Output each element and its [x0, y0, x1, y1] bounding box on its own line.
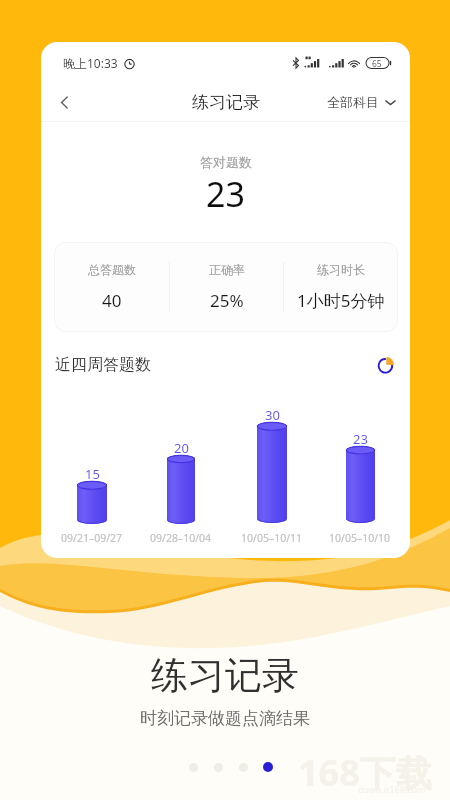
staticText: 25%: [210, 289, 244, 312]
staticText: 20: [174, 439, 189, 457]
staticText: 练习记录: [151, 652, 299, 699]
staticText: 09/21–09/27: [61, 531, 123, 545]
staticText: 全部科目: [327, 94, 379, 110]
staticText: 09/28–10/04: [150, 531, 212, 545]
staticText: 10/05–10/10: [329, 531, 391, 545]
staticText: 30: [265, 406, 280, 424]
button[interactable]: 全部科目: [327, 94, 396, 110]
staticText: 10/05–10/11: [241, 531, 303, 545]
staticText: 23: [206, 171, 245, 217]
button[interactable]: Back: [49, 87, 79, 117]
staticText: 练习记录: [192, 92, 260, 113]
staticText: 练习时长: [317, 262, 365, 277]
staticText: down.it168.com: [358, 783, 426, 795]
staticText: 晚上10:33: [63, 55, 118, 71]
staticText: 总答题数: [88, 262, 136, 277]
staticText: 65: [372, 58, 382, 70]
staticText: 答对题数: [200, 154, 252, 170]
button[interactable]: Statistics chart: [376, 355, 396, 375]
staticText: 23: [353, 430, 368, 448]
staticText: 正确率: [209, 262, 245, 277]
staticText: 15: [85, 465, 100, 483]
staticText: 近四周答题数: [55, 355, 151, 375]
staticText: 1小时5分钟: [297, 289, 385, 312]
staticText: 40: [102, 289, 122, 312]
staticText: 时刻记录做题点滴结果: [140, 708, 310, 729]
staticText: 168下载: [298, 748, 432, 797]
